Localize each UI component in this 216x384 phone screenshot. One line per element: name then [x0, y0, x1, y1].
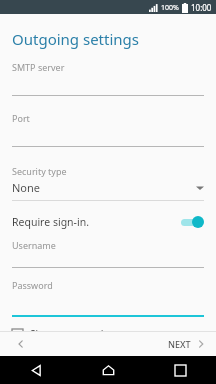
staticText: Port — [12, 112, 30, 124]
button[interactable]: Home — [72, 356, 144, 384]
button[interactable]: Port — [0, 112, 216, 147]
staticText: Security type — [12, 165, 67, 177]
staticText: None — [12, 180, 41, 195]
button[interactable]: Back — [0, 332, 42, 356]
button[interactable]: Recent apps — [144, 356, 216, 384]
staticText: Outgoing settings — [12, 29, 139, 49]
staticText: NEXT — [168, 338, 191, 350]
button[interactable]: SMTP server — [0, 61, 216, 96]
button[interactable]: NEXT — [168, 332, 216, 356]
staticText: Require sign-in. — [12, 215, 89, 229]
staticText: 100% — [161, 3, 179, 13]
button[interactable]: Show password — [0, 325, 216, 343]
button[interactable]: Security type — [0, 165, 216, 201]
button[interactable]: Password — [0, 279, 216, 317]
button[interactable]: Require sign-in. — [0, 209, 216, 235]
staticText: SMTP server — [12, 61, 65, 73]
staticText: Show password — [30, 327, 104, 341]
staticText: Password — [12, 279, 53, 291]
staticText: 10:00 — [191, 2, 212, 13]
staticText: Username — [12, 239, 56, 251]
button[interactable]: Username — [0, 239, 216, 268]
button[interactable]: Back — [0, 356, 72, 384]
